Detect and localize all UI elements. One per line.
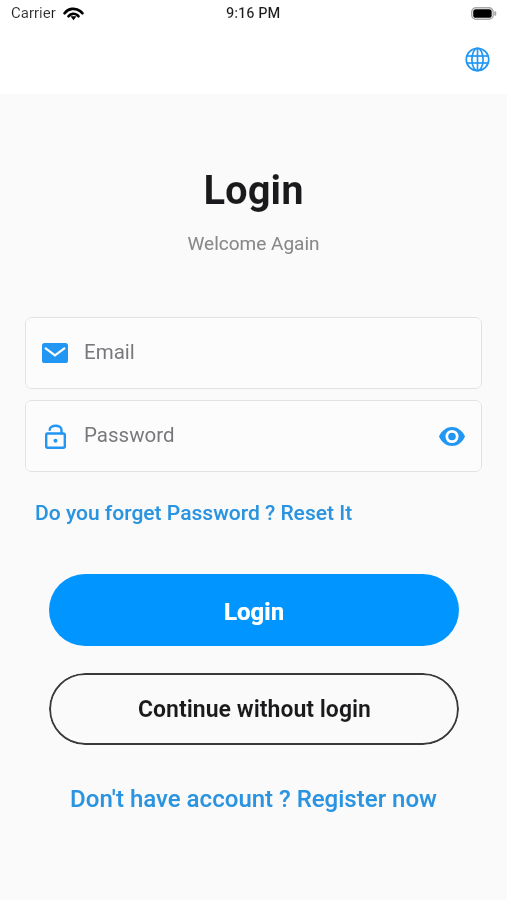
staticText: Login bbox=[0, 167, 507, 214]
button[interactable]: Login bbox=[49, 574, 459, 646]
button[interactable]: Password bbox=[25, 400, 482, 472]
button[interactable]: Show password bbox=[432, 416, 472, 456]
button[interactable]: Do you forget Password ? Reset It bbox=[35, 501, 353, 526]
staticText: Welcome Again bbox=[0, 232, 507, 254]
button[interactable]: Email bbox=[25, 317, 482, 389]
button[interactable]: Don't have account ? Register now bbox=[0, 785, 507, 813]
button[interactable]: Change language bbox=[456, 38, 499, 81]
staticText: Login bbox=[224, 598, 285, 626]
staticText: 9:16 PM bbox=[226, 5, 281, 22]
staticText: Password bbox=[84, 423, 175, 447]
button[interactable]: Continue without login bbox=[49, 673, 459, 745]
staticText: Email bbox=[84, 340, 135, 364]
staticText: Carrier bbox=[11, 4, 56, 22]
staticText: Continue without login bbox=[138, 696, 371, 723]
